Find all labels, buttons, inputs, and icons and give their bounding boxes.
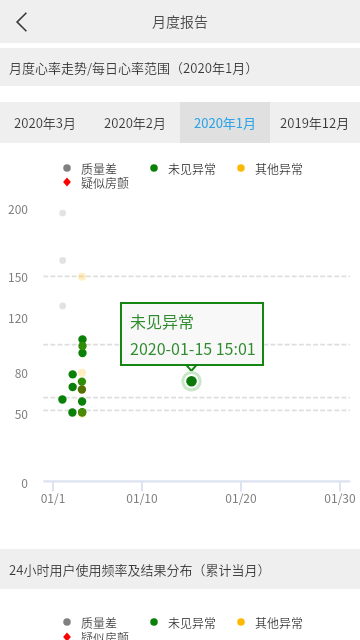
staticText: 其他异常: [255, 614, 304, 630]
button[interactable]: 质量差: [59, 160, 118, 176]
staticText: 未见异常: [130, 309, 195, 332]
staticText: 50: [0, 405, 28, 422]
staticText: 80: [0, 364, 28, 381]
button[interactable]: 2019年12月: [270, 102, 360, 143]
button[interactable]: 未见异常: [121, 303, 263, 365]
button[interactable]: 未见异常: [146, 160, 217, 176]
staticText: 01/20: [221, 489, 261, 506]
button[interactable]: 2020年3月: [0, 102, 90, 143]
staticText: 疑似房颤: [81, 629, 130, 640]
staticText: 2020年2月: [104, 113, 167, 132]
button[interactable]: 未见异常: [146, 614, 217, 630]
staticText: 质量差: [81, 614, 118, 630]
button[interactable]: 质量差: [59, 614, 118, 630]
button[interactable]: 其他异常: [233, 614, 304, 630]
staticText: 150: [0, 268, 28, 285]
staticText: 01/30: [320, 489, 360, 506]
button[interactable]: 疑似房颤: [59, 629, 130, 640]
button[interactable]: Back: [0, 0, 44, 43]
staticText: 疑似房颤: [81, 174, 130, 190]
staticText: 2020年1月: [194, 113, 257, 132]
staticText: 未见异常: [168, 160, 217, 176]
button[interactable]: 2020年1月: [180, 102, 270, 143]
staticText: 未见异常: [168, 614, 217, 630]
staticText: 月度报告: [152, 11, 208, 31]
button[interactable]: 疑似房颤: [59, 174, 130, 190]
staticText: 2019年12月: [280, 113, 350, 132]
staticText: 120: [0, 309, 28, 326]
staticText: 01/1: [33, 489, 73, 506]
staticText: 其他异常: [255, 160, 304, 176]
button[interactable]: 其他异常: [233, 160, 304, 176]
staticText: 2020-01-15 15:01: [130, 336, 256, 359]
staticText: 01/10: [122, 489, 162, 506]
button[interactable]: 2020年2月: [90, 102, 180, 143]
staticText: 月度心率走势/每日心率范围（2020年1月）: [9, 58, 259, 77]
staticText: 0: [0, 474, 28, 491]
staticText: 24小时用户使用频率及结果分布（累计当月）: [9, 560, 271, 579]
staticText: 200: [0, 200, 28, 217]
staticText: 质量差: [81, 160, 118, 176]
staticText: 2020年3月: [14, 113, 77, 132]
